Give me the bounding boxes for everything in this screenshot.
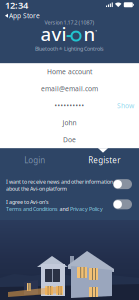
button[interactable]: Doe bbox=[0, 131, 139, 148]
button[interactable]: email@email.com bbox=[0, 80, 139, 97]
staticText: Bluetooth bbox=[35, 45, 58, 52]
button[interactable]: Toggle bbox=[112, 198, 133, 210]
button[interactable]: John bbox=[0, 114, 139, 131]
staticText: John bbox=[62, 118, 76, 127]
staticText: Privacy Policy bbox=[70, 205, 103, 212]
staticText: n bbox=[83, 21, 95, 46]
staticText: 12:34 bbox=[5, 0, 28, 11]
button[interactable]: Login bbox=[0, 148, 69, 172]
staticText: Lighting Controls bbox=[63, 45, 104, 52]
staticText: Register bbox=[88, 155, 120, 165]
button[interactable]: Register bbox=[69, 148, 139, 172]
staticText: Version 1.17.2 (1087) bbox=[44, 19, 94, 26]
staticText: Show bbox=[117, 101, 134, 110]
staticText: I agree to Avi-on's bbox=[6, 198, 49, 205]
button[interactable]: Home account bbox=[0, 63, 139, 80]
staticText: I want to receive news and other informa… bbox=[6, 178, 113, 185]
staticText: ® bbox=[59, 46, 62, 51]
staticText: •••••••••• bbox=[54, 101, 84, 110]
button[interactable]: Toggle bbox=[112, 178, 133, 190]
staticText: Login bbox=[24, 155, 45, 165]
staticText: App Store bbox=[9, 11, 40, 20]
staticText: avi bbox=[40, 21, 66, 46]
staticText: about the Avi-on platform bbox=[6, 185, 67, 192]
staticText: and bbox=[59, 205, 68, 212]
button[interactable]: •••••••••• bbox=[0, 97, 139, 114]
staticText: Terms and Conditions bbox=[6, 205, 58, 212]
staticText: Doe bbox=[63, 135, 76, 144]
staticText: email@email.com bbox=[41, 84, 98, 93]
staticText: Home account bbox=[47, 67, 92, 76]
